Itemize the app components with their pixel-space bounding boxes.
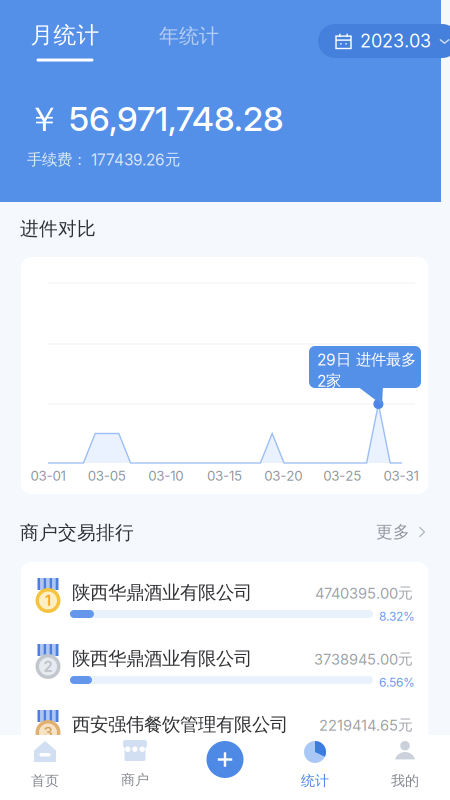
staticText: 29日 进件最多 [317,350,416,369]
staticText: 2219414.65元 [319,716,413,734]
staticText: 03-25 [323,468,361,484]
staticText: 西安强伟餐饮管理有限公司 [72,713,288,736]
button[interactable]: 更多 [368,521,428,543]
staticText: 8.32% [379,609,415,623]
button[interactable]: 商户 [90,740,180,792]
staticText: 03-05 [88,468,126,484]
staticText: ￥ 56,971,748.28 [27,98,284,141]
staticText: 进件对比 [20,217,96,240]
button[interactable]: 3 [21,694,428,760]
staticText: 03-10 [148,468,183,484]
staticText: 1 [45,592,51,609]
staticText: 商户 [121,771,149,789]
staticText: 6.56% [379,675,415,689]
staticText: 3 [43,724,52,741]
button[interactable]: 2 [21,628,428,694]
staticText: 2023.03 [360,30,431,52]
staticText: 年统计 [159,23,219,49]
staticText: 3738945.00元 [314,650,413,668]
staticText: 更多 [376,521,410,542]
staticText: 我的 [391,772,419,790]
button[interactable]: 1 [21,562,428,628]
button[interactable]: 新增 [180,741,270,778]
staticText: 03-01 [30,468,65,484]
staticText: 4.50% [378,741,415,755]
staticText: 商户交易排行 [20,521,134,544]
staticText: 月统计 [30,21,99,50]
button[interactable]: 统计 [270,741,360,793]
staticText: 03-20 [264,468,302,484]
staticText: 2家 [317,371,341,391]
button[interactable]: 2023.03 [318,24,450,58]
staticText: 陕西华鼎酒业有限公司 [72,647,252,670]
staticText: 首页 [31,772,59,790]
staticText: 手续费： 177439.26元 [27,150,180,169]
staticText: 4740395.00元 [315,584,413,602]
staticText: 统计 [301,772,329,790]
staticText: 陕西华鼎酒业有限公司 [72,581,252,604]
button[interactable]: 年统计 [143,24,235,48]
staticText: 03-31 [383,468,418,484]
button[interactable]: 首页 [0,740,90,792]
staticText: 2 [43,658,52,675]
button[interactable]: 我的 [360,741,450,793]
staticText: 03-15 [207,468,242,484]
button[interactable]: 月统计 [19,21,111,65]
